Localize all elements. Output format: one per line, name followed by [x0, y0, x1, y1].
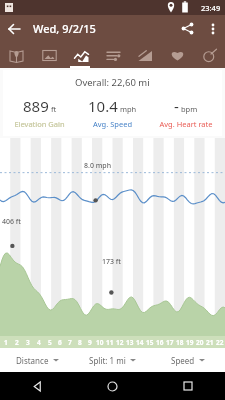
- button[interactable]: Splits: [97, 42, 129, 68]
- staticText: 15: [146, 338, 154, 347]
- staticText: 173 ft: [102, 257, 122, 267]
- button[interactable]: Recent apps: [150, 372, 225, 400]
- staticText: 889: [23, 96, 49, 116]
- button[interactable]: Back: [0, 372, 75, 400]
- staticText: Speed: [171, 355, 195, 366]
- button[interactable]: Laps: [193, 42, 225, 68]
- staticText: Wed, 9/2/15: [33, 21, 174, 36]
- button[interactable]: 889: [3, 96, 76, 129]
- button[interactable]: Slope: [129, 42, 161, 68]
- button[interactable]: Distance: [0, 348, 75, 372]
- staticText: 18: [176, 338, 184, 347]
- staticText: 22: [216, 338, 224, 347]
- staticText: 23:49: [201, 3, 221, 13]
- staticText: mph: [120, 104, 137, 114]
- button[interactable]: More options: [201, 17, 225, 41]
- staticText: Split: 1 mi: [89, 355, 126, 366]
- button[interactable]: -: [149, 96, 222, 129]
- button[interactable]: Home: [75, 372, 150, 400]
- staticText: ft: [51, 104, 57, 114]
- staticText: 13: [126, 338, 134, 347]
- staticText: 406 ft: [2, 217, 22, 227]
- staticText: Avg. Heart rate: [159, 119, 213, 129]
- staticText: 17: [166, 338, 174, 347]
- staticText: 16: [156, 338, 164, 347]
- staticText: 8: [78, 338, 82, 347]
- button[interactable]: Back: [0, 15, 27, 42]
- button[interactable]: Heart rate: [161, 42, 193, 68]
- button[interactable]: Split: 1 mi: [75, 348, 150, 372]
- staticText: Distance: [16, 355, 49, 366]
- staticText: 19: [186, 338, 194, 347]
- staticText: Elevation Gain: [14, 119, 65, 129]
- staticText: 11: [106, 338, 114, 347]
- staticText: 2: [15, 338, 19, 347]
- staticText: Avg. Speed: [93, 119, 132, 129]
- button[interactable]: 10.4: [76, 96, 149, 129]
- staticText: 12: [116, 338, 124, 347]
- staticText: Overall: 22,60 mi: [75, 76, 150, 89]
- staticText: 14: [136, 338, 144, 347]
- staticText: -: [174, 96, 179, 116]
- staticText: 3: [26, 338, 30, 347]
- staticText: 5: [48, 338, 52, 347]
- staticText: 6: [58, 338, 62, 347]
- staticText: 7: [68, 338, 72, 347]
- button[interactable]: Charts: [65, 42, 97, 68]
- staticText: 20: [196, 338, 204, 347]
- staticText: 10.4: [88, 96, 118, 116]
- button[interactable]: Share: [174, 15, 201, 42]
- staticText: 21: [206, 338, 214, 347]
- button[interactable]: Photos: [33, 42, 65, 68]
- staticText: 10: [96, 338, 104, 347]
- staticText: 1: [4, 338, 8, 347]
- staticText: 9: [88, 338, 92, 347]
- staticText: bpm: [181, 104, 198, 114]
- staticText: 8.0 mph: [84, 161, 112, 171]
- button[interactable]: Map: [0, 42, 33, 68]
- button[interactable]: Speed: [150, 348, 225, 372]
- staticText: 4: [37, 338, 41, 347]
